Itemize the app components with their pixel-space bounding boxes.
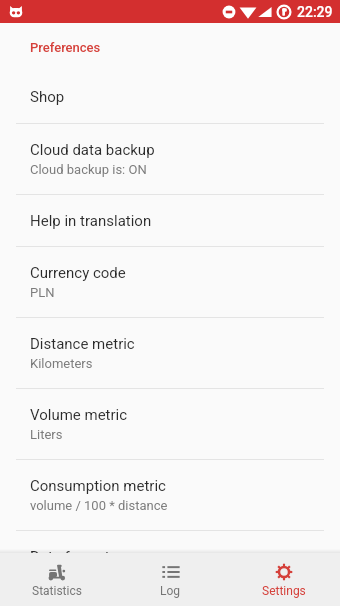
other: Mobile signal <box>258 5 272 19</box>
button[interactable]: Consumption metric <box>0 460 340 530</box>
button[interactable]: Date format <box>0 531 340 601</box>
button[interactable]: Currency code <box>0 247 340 317</box>
staticText: Consumption metric <box>30 477 166 495</box>
staticText: Help in translation <box>30 212 152 230</box>
button[interactable]: Cloud data backup <box>0 124 340 194</box>
staticText: Liters <box>30 427 63 442</box>
other: Alarm <box>277 5 291 19</box>
staticText: Volume metric <box>30 406 128 424</box>
staticText: Currency code <box>30 264 126 282</box>
button[interactable]: Settings <box>227 558 340 602</box>
other: Wi-Fi <box>239 3 257 21</box>
staticText: Date format <box>30 548 110 566</box>
staticText: Settings <box>262 584 306 598</box>
staticText: Preferences <box>30 40 101 55</box>
staticText: volume / 100 * distance <box>30 498 168 513</box>
staticText: Cloud data backup <box>30 141 155 159</box>
other: Do not disturb <box>222 5 236 19</box>
staticText: Log <box>160 584 181 598</box>
button[interactable]: Help in translation <box>0 195 340 246</box>
staticText: Statistics <box>32 584 82 598</box>
staticText: Distance metric <box>30 335 135 353</box>
staticText: PLN <box>30 285 55 300</box>
staticText: Shop <box>30 88 65 106</box>
button[interactable]: Log <box>114 558 227 602</box>
button[interactable]: Shop <box>0 71 340 123</box>
staticText: 22:29 <box>297 4 333 20</box>
staticText: dd.MM.yyyy <box>30 569 99 584</box>
staticText: Kilometers <box>30 356 93 371</box>
button[interactable]: Volume metric <box>0 389 340 459</box>
staticText: Cloud backup is: ON <box>30 162 147 177</box>
button[interactable]: Statistics <box>0 558 114 602</box>
button[interactable]: Distance metric <box>0 318 340 388</box>
